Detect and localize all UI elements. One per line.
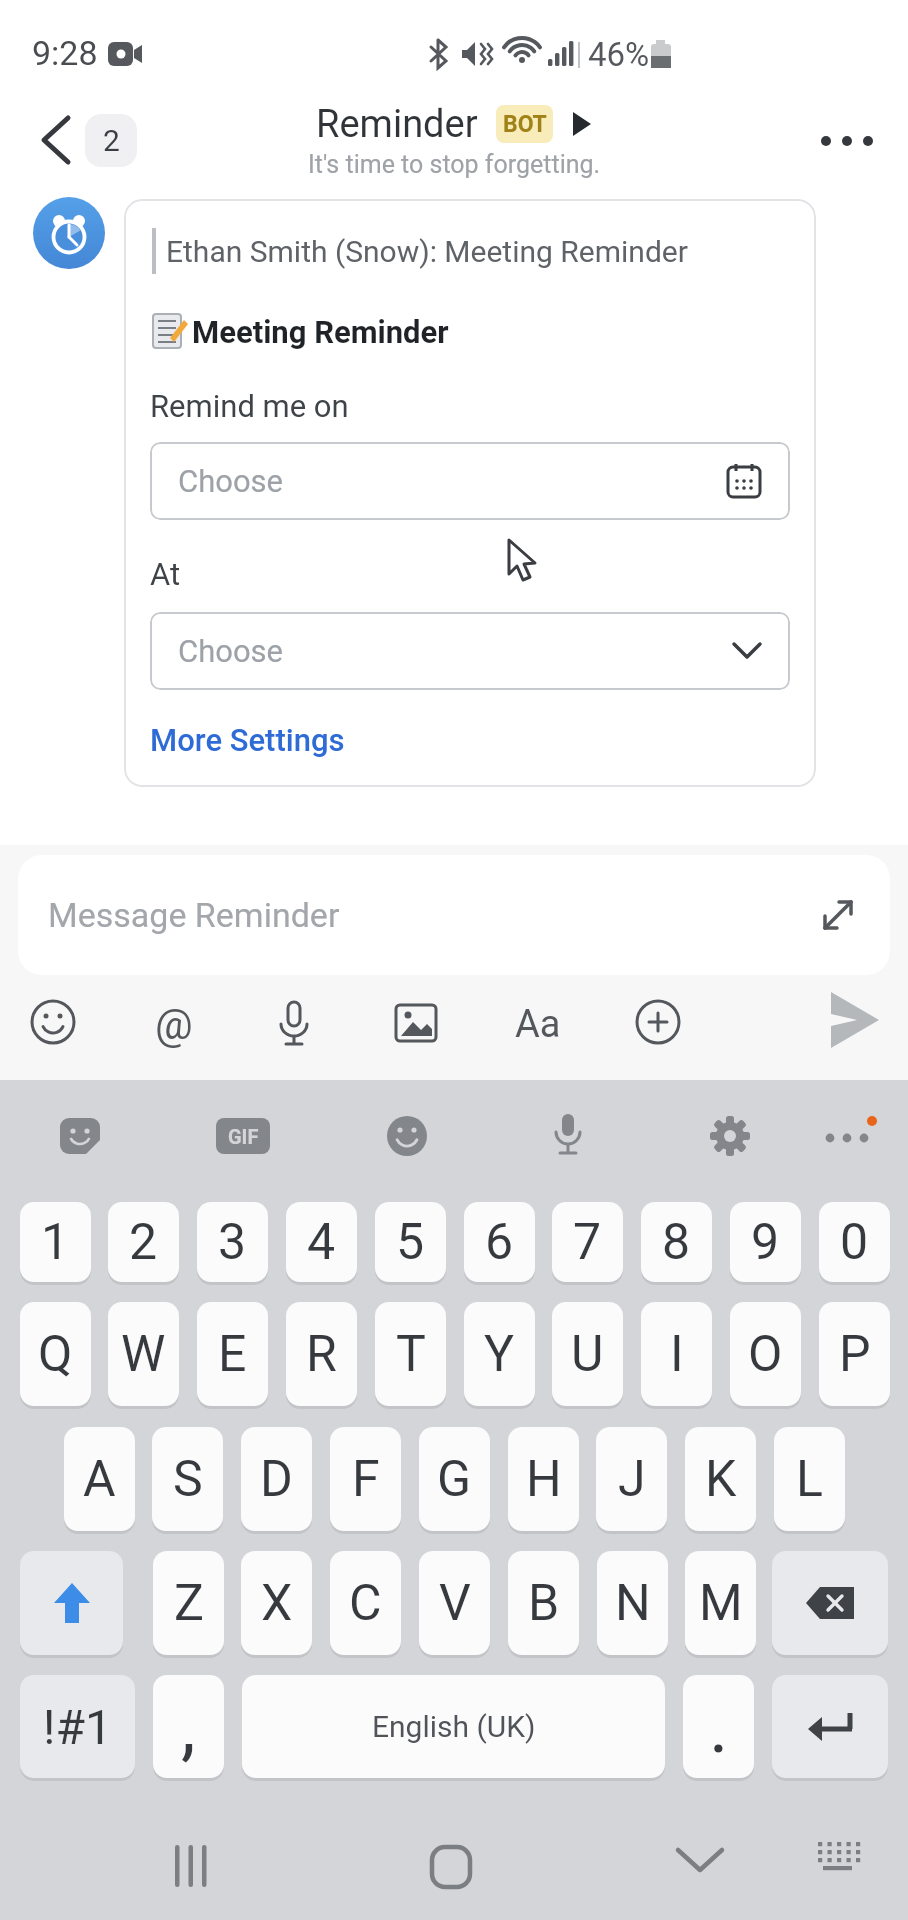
staticText: ,: [181, 1683, 196, 1770]
button[interactable]: V: [419, 1551, 490, 1655]
staticText: BOT: [503, 111, 547, 138]
button[interactable]: 3: [197, 1202, 268, 1282]
button[interactable]: Q: [20, 1302, 91, 1406]
button[interactable]: 1: [20, 1202, 91, 1282]
staticText: O: [748, 1325, 783, 1384]
button[interactable]: Aa: [508, 1000, 568, 1048]
staticText: 8: [662, 1213, 691, 1272]
button[interactable]: 0: [819, 1202, 890, 1282]
button[interactable]: [634, 1000, 682, 1048]
button[interactable]: E: [197, 1302, 268, 1406]
button[interactable]: [164, 1835, 224, 1895]
staticText: Choose: [178, 633, 284, 669]
button[interactable]: O: [730, 1302, 801, 1406]
staticText: X: [261, 1574, 293, 1633]
button[interactable]: 9: [730, 1202, 801, 1282]
staticText: GIF: [228, 1125, 259, 1148]
button[interactable]: [772, 1551, 888, 1655]
button[interactable]: 2: [85, 114, 137, 167]
staticText: 1: [41, 1213, 70, 1272]
button[interactable]: C: [330, 1551, 401, 1655]
button[interactable]: !#1: [20, 1675, 135, 1778]
button[interactable]: More Settings: [150, 722, 345, 758]
button[interactable]: I: [641, 1302, 712, 1406]
button[interactable]: 7: [552, 1202, 623, 1282]
button[interactable]: [812, 1838, 868, 1886]
button[interactable]: [421, 1836, 481, 1896]
button[interactable]: L: [774, 1427, 845, 1531]
staticText: @: [155, 1000, 193, 1048]
button[interactable]: [810, 115, 890, 167]
button[interactable]: Message Reminder: [18, 855, 890, 975]
button[interactable]: M: [685, 1551, 756, 1655]
button[interactable]: [393, 1000, 441, 1048]
staticText: E: [218, 1325, 247, 1384]
staticText: Y: [484, 1325, 515, 1384]
button[interactable]: Choose: [150, 612, 790, 690]
button[interactable]: K: [685, 1427, 756, 1531]
button[interactable]: [823, 988, 885, 1054]
button[interactable]: ,: [153, 1675, 224, 1778]
button[interactable]: U: [552, 1302, 623, 1406]
staticText: Message Reminder: [48, 895, 340, 935]
button[interactable]: T: [375, 1302, 446, 1406]
button[interactable]: H: [508, 1427, 579, 1531]
button[interactable]: 8: [641, 1202, 712, 1282]
button[interactable]: .: [683, 1675, 754, 1778]
button[interactable]: 2: [108, 1202, 179, 1282]
button[interactable]: [270, 1000, 318, 1048]
staticText: Q: [38, 1325, 73, 1384]
staticText: It's time to stop forgetting.: [308, 150, 601, 179]
button[interactable]: S: [152, 1427, 223, 1531]
staticText: 3: [218, 1213, 247, 1272]
button[interactable]: [772, 1675, 888, 1778]
staticText: 5: [396, 1213, 425, 1272]
staticText: Remind me on: [150, 388, 349, 424]
staticText: A: [83, 1450, 116, 1509]
staticText: P: [839, 1325, 871, 1384]
staticText: J: [618, 1450, 646, 1509]
button[interactable]: Choose: [150, 442, 790, 520]
staticText: 9: [751, 1213, 780, 1272]
staticText: H: [526, 1450, 562, 1509]
staticText: K: [705, 1450, 737, 1509]
button[interactable]: J: [596, 1427, 667, 1531]
staticText: S: [173, 1450, 203, 1509]
button[interactable]: A: [64, 1427, 135, 1531]
staticText: 6: [485, 1213, 514, 1272]
staticText: Ethan Smith (Snow): Meeting Reminder: [166, 234, 688, 269]
staticText: N: [615, 1574, 651, 1633]
button[interactable]: X: [241, 1551, 312, 1655]
button[interactable]: GIF: [216, 1118, 270, 1154]
staticText: 9:28: [32, 33, 98, 73]
button[interactable]: R: [286, 1302, 357, 1406]
staticText: 4: [307, 1213, 336, 1272]
button[interactable]: Z: [153, 1551, 224, 1655]
button[interactable]: [20, 1551, 123, 1655]
staticText: 2: [103, 123, 120, 158]
button[interactable]: G: [419, 1427, 490, 1531]
staticText: T: [396, 1325, 426, 1384]
button[interactable]: F: [330, 1427, 401, 1531]
button[interactable]: B: [508, 1551, 579, 1655]
button[interactable]: [28, 110, 88, 170]
button[interactable]: 4: [286, 1202, 357, 1282]
staticText: At: [150, 556, 181, 592]
button[interactable]: @: [150, 1000, 198, 1048]
button[interactable]: W: [108, 1302, 179, 1406]
staticText: More Settings: [150, 722, 345, 758]
button[interactable]: [670, 1830, 730, 1890]
button[interactable]: English (UK): [242, 1675, 665, 1778]
button[interactable]: P: [819, 1302, 890, 1406]
staticText: W: [121, 1325, 166, 1384]
staticText: .: [709, 1683, 729, 1770]
button[interactable]: D: [241, 1427, 312, 1531]
staticText: 2: [129, 1213, 158, 1272]
button[interactable]: 6: [464, 1202, 535, 1282]
button[interactable]: 5: [375, 1202, 446, 1282]
staticText: 46%: [588, 35, 650, 74]
staticText: Reminder: [316, 102, 478, 147]
button[interactable]: [29, 1000, 77, 1048]
button[interactable]: N: [597, 1551, 668, 1655]
button[interactable]: Y: [464, 1302, 535, 1406]
